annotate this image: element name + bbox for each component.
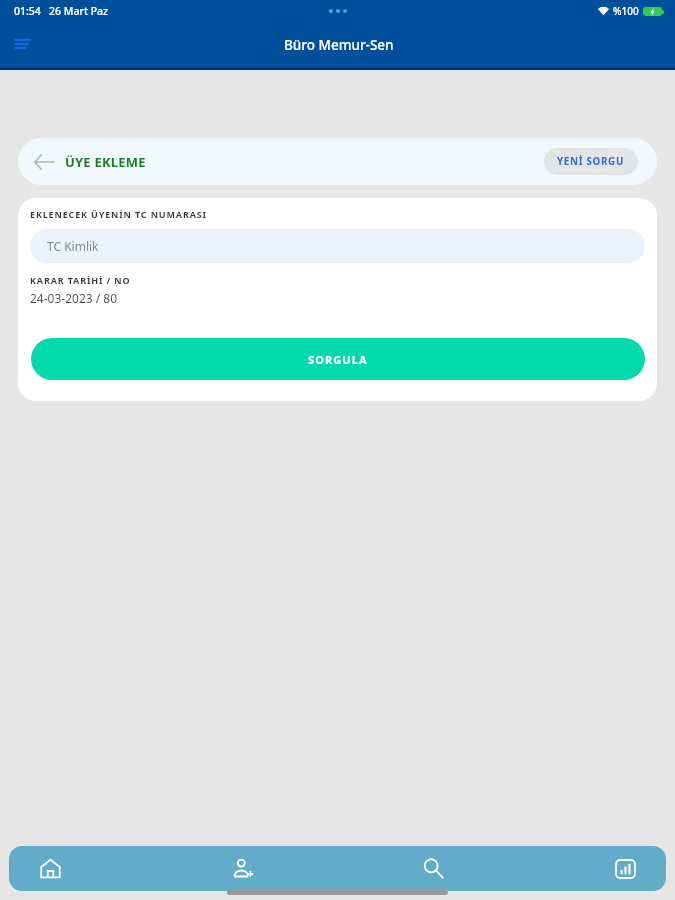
staticText: EKLENECEK ÜYENİN TC NUMARASI	[30, 208, 207, 220]
staticText: 24-03-2023 / 80	[30, 290, 118, 306]
staticText: ÜYE EKLEME	[65, 153, 146, 171]
button[interactable]: Home	[27, 846, 73, 891]
button[interactable]: Back	[29, 147, 59, 177]
button[interactable]: Add member	[219, 846, 265, 891]
staticText: SORGULA	[308, 352, 368, 367]
staticText: 01:54 26 Mart Paz	[14, 4, 109, 18]
button[interactable]: Reports	[602, 846, 648, 891]
staticText: YENİ SORGU	[557, 155, 625, 168]
staticText: KARAR TARİHİ / NO	[30, 274, 131, 286]
button[interactable]: SORGULA	[31, 338, 645, 380]
button[interactable]: Menu	[4, 26, 40, 62]
staticText: Büro Memur-Sen	[284, 36, 394, 54]
button[interactable]: YENİ SORGU	[544, 148, 638, 175]
button[interactable]: TC Kimlik	[30, 229, 645, 263]
button[interactable]: Search	[410, 846, 456, 891]
staticText: %100	[613, 4, 639, 18]
staticText: TC Kimlik	[47, 238, 99, 254]
